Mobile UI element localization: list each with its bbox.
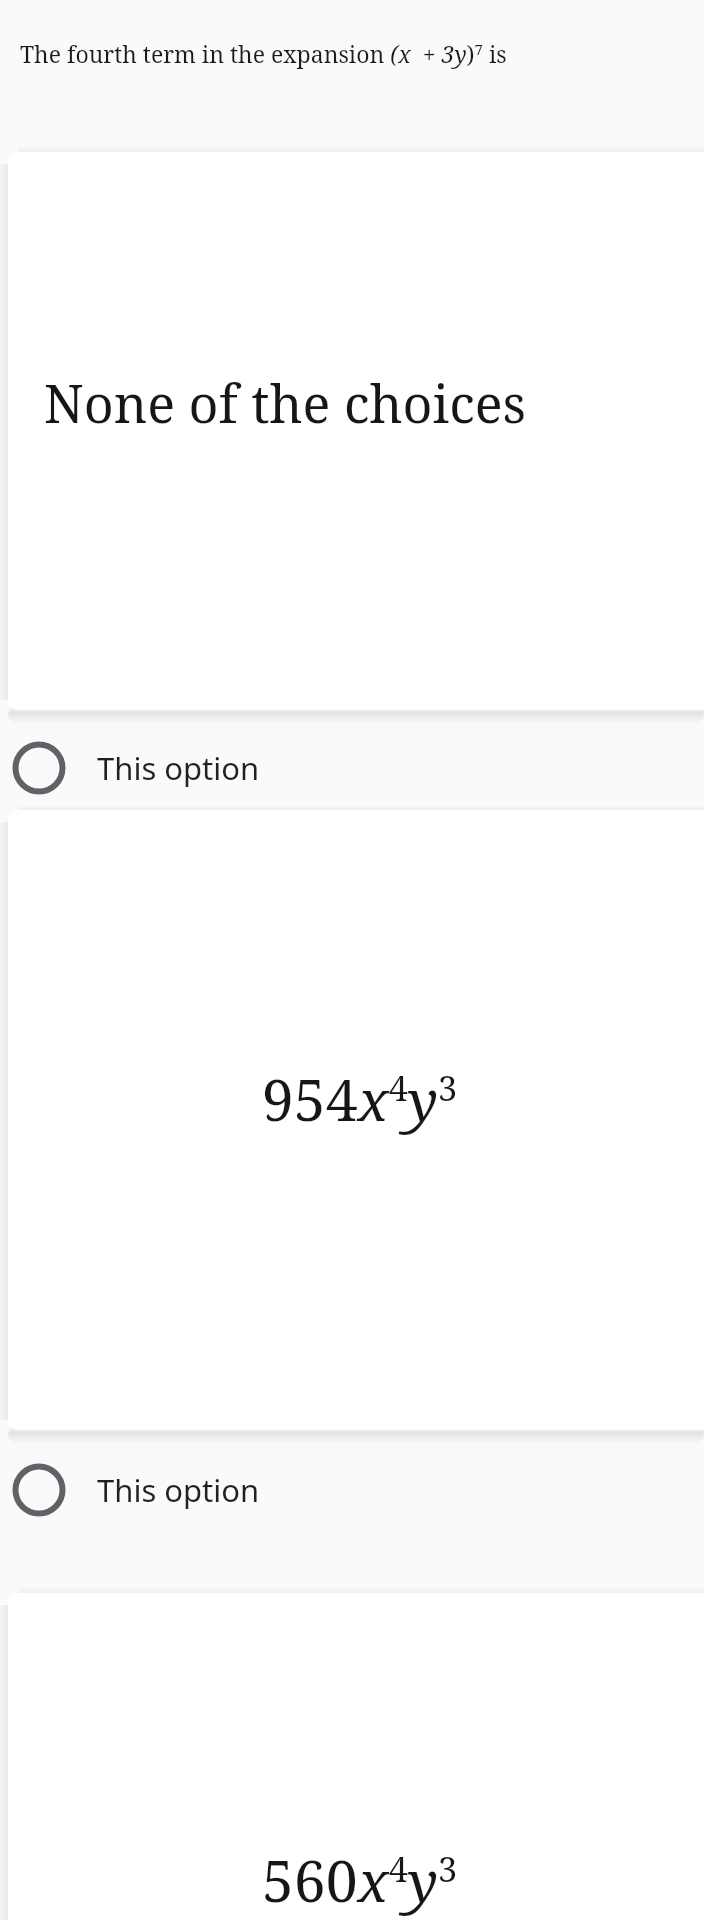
button[interactable]: Select this option bbox=[0, 735, 704, 801]
button[interactable]: Select this option bbox=[0, 1457, 704, 1523]
button[interactable]: 954x4y3 bbox=[8, 810, 704, 1430]
staticText: None of the choices bbox=[44, 367, 527, 438]
other: Select this option bbox=[12, 1463, 66, 1517]
other: Select this option bbox=[12, 741, 66, 795]
button[interactable]: 560x4y3 bbox=[8, 1593, 704, 1920]
staticText: This option bbox=[97, 747, 260, 789]
staticText: The fourth term in the expansion (x + 3y… bbox=[20, 38, 507, 69]
staticText: This option bbox=[97, 1469, 260, 1511]
button[interactable]: None of the choices bbox=[8, 152, 704, 710]
staticText: 560x4y3 bbox=[262, 1841, 458, 1919]
staticText: 954x4y3 bbox=[262, 1060, 458, 1138]
